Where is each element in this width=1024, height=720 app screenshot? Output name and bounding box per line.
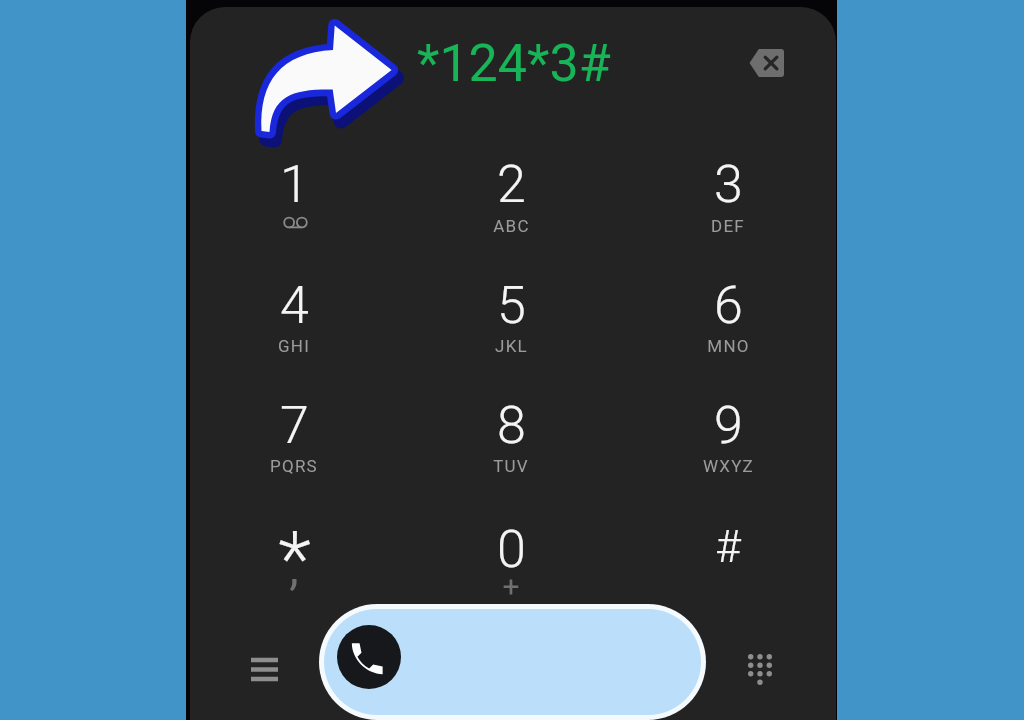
staticText: 5 [497,275,526,336]
button[interactable]: Key 1 [222,136,366,244]
staticText: 6 [714,275,743,336]
button[interactable]: Key 8 [439,377,583,485]
staticText: *124*3# [417,33,611,93]
button[interactable]: Dialed number [417,33,677,93]
button[interactable]: Call [324,609,701,715]
button[interactable]: Key 6 [656,257,800,365]
staticText: # [715,521,741,573]
staticText: DEF [711,216,745,236]
button[interactable]: Key 3 [656,136,800,244]
staticText: 7 [280,395,309,456]
button[interactable]: Key # [656,501,800,609]
staticText: JKL [495,336,528,356]
staticText: PQRS [270,456,318,476]
staticText: ABC [493,216,530,236]
staticText: 9 [714,395,743,456]
staticText: 1 [280,154,309,215]
staticText: 4 [280,275,309,336]
button[interactable]: Backspace [735,37,797,89]
button[interactable]: Key 7 [222,377,366,485]
button[interactable]: Key 0 [439,501,583,609]
staticText: 3 [714,154,743,215]
button[interactable]: Call [337,625,401,689]
button[interactable]: Dialpad [730,638,790,700]
staticText: * [278,514,311,603]
button[interactable]: Key 4 [222,257,366,365]
staticText: TUV [493,456,529,476]
staticText: 0 [497,519,526,580]
staticText: GHI [278,336,310,356]
staticText: 8 [497,395,526,456]
staticText: WXYZ [703,456,754,476]
button[interactable]: Key * [222,501,366,609]
button[interactable]: Menu [234,637,294,701]
staticText: MNO [707,336,750,356]
button[interactable]: Key 5 [439,257,583,365]
staticText: + [502,569,520,604]
staticText: 2 [497,154,526,215]
button[interactable]: Key 9 [656,377,800,485]
staticText: , [289,539,299,595]
button[interactable]: Key 2 [439,136,583,244]
